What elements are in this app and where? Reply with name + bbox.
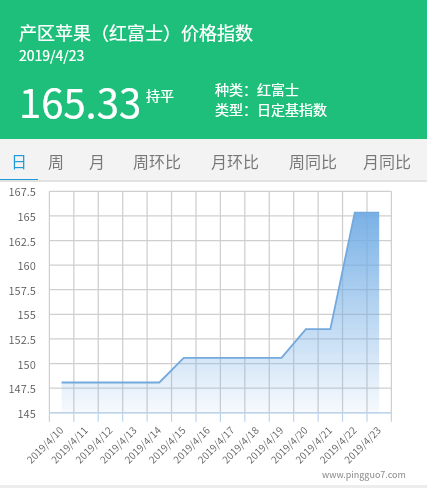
button[interactable]: 日 xyxy=(0,139,38,182)
staticText: 月环比 xyxy=(211,149,260,172)
staticText: 月 xyxy=(89,149,106,172)
staticText: 周同比 xyxy=(289,149,338,172)
staticText: 类型：日定基指数 xyxy=(215,99,327,119)
button[interactable]: 周环比 xyxy=(120,139,195,182)
staticText: 2019/4/23 xyxy=(19,45,85,65)
staticText: 种类：红富士 xyxy=(215,79,299,99)
button[interactable]: 月环比 xyxy=(195,139,275,182)
button[interactable]: 周同比 xyxy=(275,139,352,182)
button[interactable]: 月 xyxy=(75,139,120,182)
staticText: 月同比 xyxy=(363,149,412,172)
staticText: 产区苹果（红富士）价格指数 xyxy=(19,19,253,45)
staticText: 日 xyxy=(11,149,28,172)
staticText: 周环比 xyxy=(133,149,182,172)
button[interactable]: 月同比 xyxy=(352,139,423,182)
staticText: 周 xyxy=(48,149,65,172)
staticText: 持平 xyxy=(146,85,174,105)
button[interactable]: 周 xyxy=(38,139,75,182)
staticText: 165.33 xyxy=(19,72,142,130)
